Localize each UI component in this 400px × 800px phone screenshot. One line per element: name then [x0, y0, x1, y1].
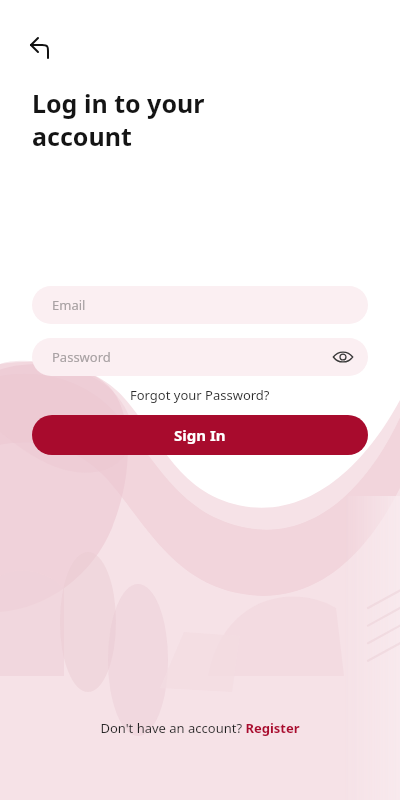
staticText: Sign In: [174, 425, 226, 445]
button[interactable]: Show password: [330, 344, 356, 370]
staticText: Email: [52, 296, 86, 314]
staticText: Log in to your account: [32, 86, 205, 153]
button[interactable]: Password: [32, 338, 368, 376]
button[interactable]: Sign In: [32, 415, 368, 455]
button[interactable]: Forgot your Password?: [126, 384, 274, 406]
button[interactable]: Don't have an account? Register: [92, 715, 308, 741]
staticText: Password: [52, 348, 111, 366]
button[interactable]: Email: [32, 286, 368, 324]
button[interactable]: Back: [18, 26, 62, 70]
staticText: Don't have an account? Register: [100, 719, 300, 737]
staticText: Forgot your Password?: [130, 386, 270, 404]
